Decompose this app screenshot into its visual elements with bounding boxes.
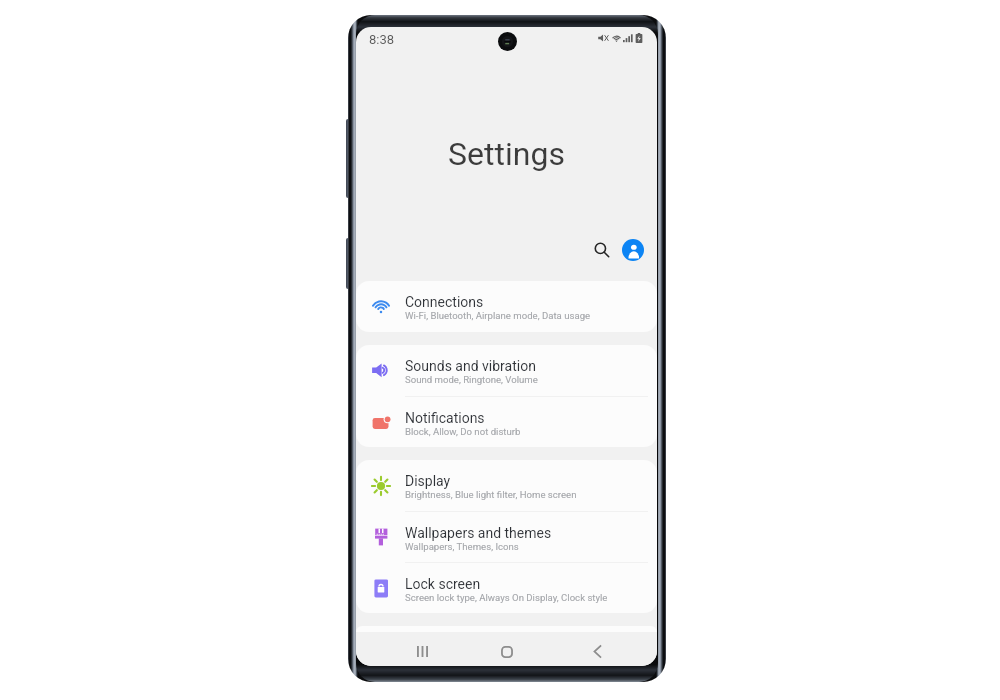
button[interactable]: Back xyxy=(582,637,612,666)
staticText: Lock screen xyxy=(405,576,481,592)
staticText: Block, Allow, Do not disturb xyxy=(405,426,521,437)
button[interactable]: Search xyxy=(589,237,615,263)
button[interactable]: Lock screen xyxy=(356,563,657,613)
staticText: Wallpapers and themes xyxy=(405,525,552,541)
button[interactable]: Notifications xyxy=(356,397,657,447)
staticText: Notifications xyxy=(405,410,485,426)
staticText: 8:38 xyxy=(369,32,395,47)
staticText: Connections xyxy=(405,294,484,310)
staticText: Brightness, Blue light filter, Home scre… xyxy=(405,489,577,500)
staticText: Sounds and vibration xyxy=(405,358,536,374)
button[interactable]: Sounds and vibration xyxy=(356,345,657,396)
staticText: Wi-Fi, Bluetooth, Airplane mode, Data us… xyxy=(405,310,591,321)
staticText: Screen lock type, Always On Display, Clo… xyxy=(405,592,608,603)
button[interactable]: Display xyxy=(356,460,657,511)
button[interactable]: Home xyxy=(492,637,522,666)
button[interactable]: Connections xyxy=(356,281,657,332)
staticText: Display xyxy=(405,473,451,489)
button[interactable]: Recents xyxy=(407,637,437,666)
button[interactable]: Wallpapers and themes xyxy=(356,512,657,562)
staticText: Settings xyxy=(356,135,657,173)
staticText: Sound mode, Ringtone, Volume xyxy=(405,374,538,385)
staticText: Wallpapers, Themes, Icons xyxy=(405,541,519,552)
button[interactable]: Account xyxy=(622,239,644,261)
